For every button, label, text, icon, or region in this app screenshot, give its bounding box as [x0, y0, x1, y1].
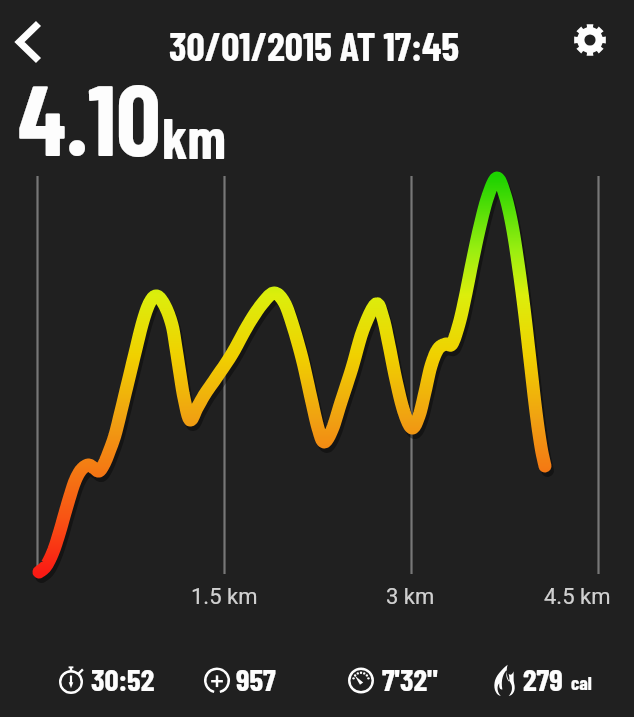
staticText: 30:52 [91, 660, 155, 697]
button[interactable]: Calories [492, 658, 532, 695]
other: Calories [492, 664, 518, 696]
staticText: 3 km [386, 584, 435, 610]
staticText: 279 [523, 660, 563, 697]
button[interactable]: Elevation [204, 658, 244, 695]
button[interactable]: Duration [59, 658, 123, 695]
staticText: 4.10 [18, 57, 161, 176]
button[interactable]: Back [4, 8, 66, 68]
button[interactable]: Pace [348, 658, 404, 695]
other: Elevation [204, 668, 230, 693]
staticText: 4.5 km [544, 584, 611, 610]
staticText: km [162, 102, 227, 170]
staticText: 7'32" [382, 660, 438, 697]
button[interactable]: Settings [561, 9, 621, 69]
staticText: cal [571, 671, 592, 694]
staticText: 957 [236, 660, 276, 697]
other: Pace [348, 668, 374, 693]
staticText: 1.5 km [191, 584, 258, 610]
other: Duration [59, 665, 83, 694]
staticText: 30/01/2015 AT 17:45 [169, 21, 459, 69]
